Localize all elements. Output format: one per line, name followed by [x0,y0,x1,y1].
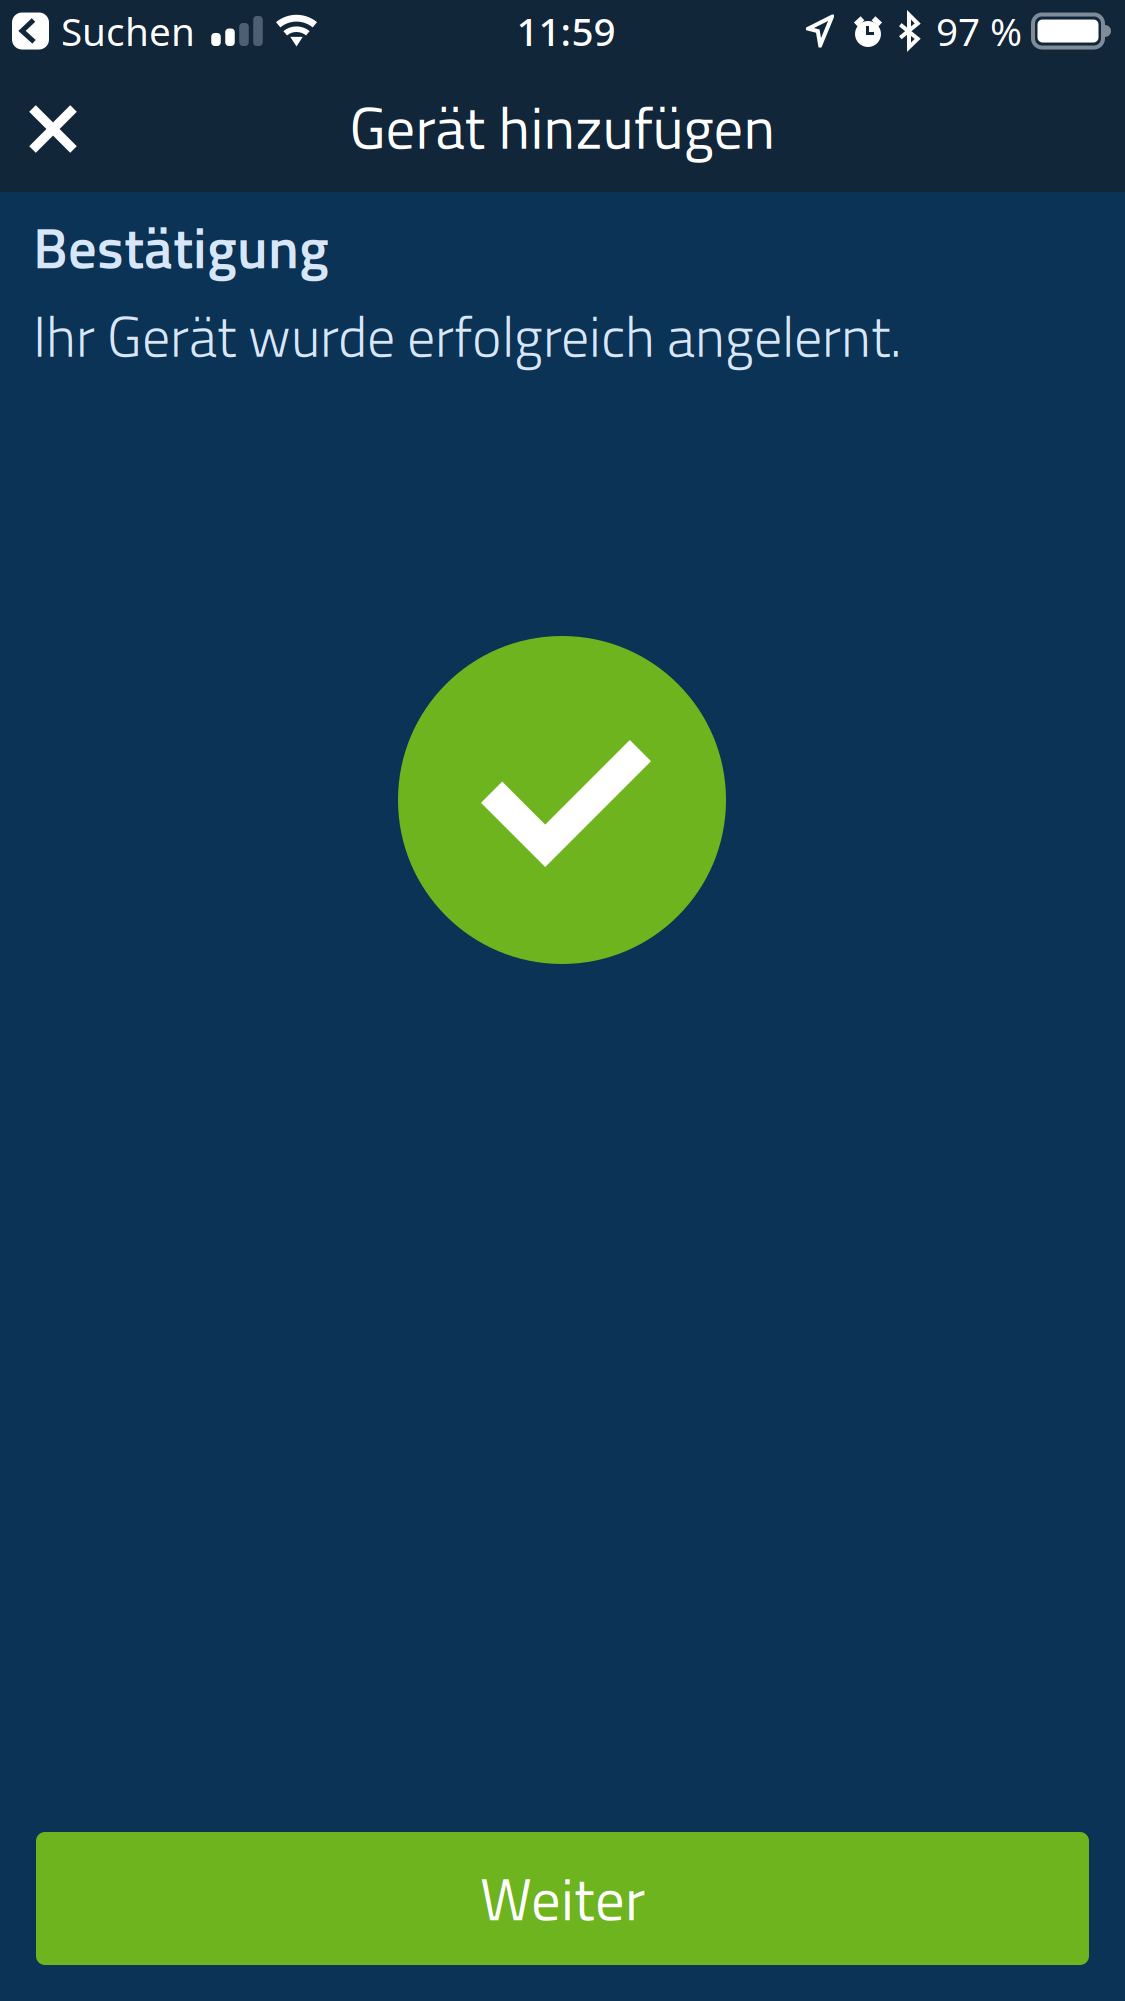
staticText: Gerät hinzufügen [349,82,775,172]
staticText: 11:59 [516,5,615,57]
button[interactable]: Schließen [0,75,112,179]
staticText: Suchen [61,5,195,57]
staticText: Bestätigung [33,204,329,290]
button[interactable]: Weiter [36,1832,1089,1965]
staticText: 97 % [936,5,1022,57]
staticText: Weiter [480,1854,645,1943]
staticText: Ihr Gerät wurde erfolgreich angelernt. [33,293,902,378]
